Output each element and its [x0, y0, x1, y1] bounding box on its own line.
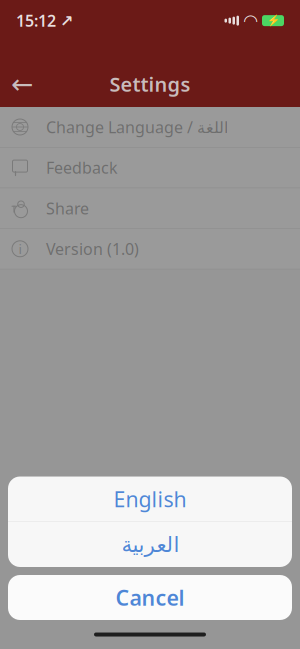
button[interactable]: Change Language / اللغة: [0, 107, 300, 147]
staticText: 15:12 ↗: [16, 10, 73, 31]
button[interactable]: Feedback: [0, 148, 300, 188]
button[interactable]: English: [8, 476, 292, 521]
staticText: ◠: [244, 11, 257, 30]
staticText: Settings: [109, 71, 190, 97]
staticText: Share: [46, 198, 89, 219]
staticText: Version (1.0): [46, 238, 139, 259]
staticText: Change Language / اللغة: [46, 116, 228, 138]
staticText: ←: [11, 69, 33, 99]
button[interactable]: i: [0, 229, 300, 269]
staticText: ⚡: [266, 14, 279, 27]
staticText: Cancel: [115, 583, 184, 612]
button[interactable]: Cancel: [8, 575, 292, 620]
staticText: العربية: [121, 532, 179, 557]
button[interactable]: Share: [0, 188, 300, 228]
button[interactable]: العربية: [8, 522, 292, 567]
staticText: i: [18, 240, 21, 258]
staticText: Feedback: [46, 157, 118, 178]
staticText: English: [113, 485, 186, 513]
button[interactable]: Back: [0, 67, 44, 101]
